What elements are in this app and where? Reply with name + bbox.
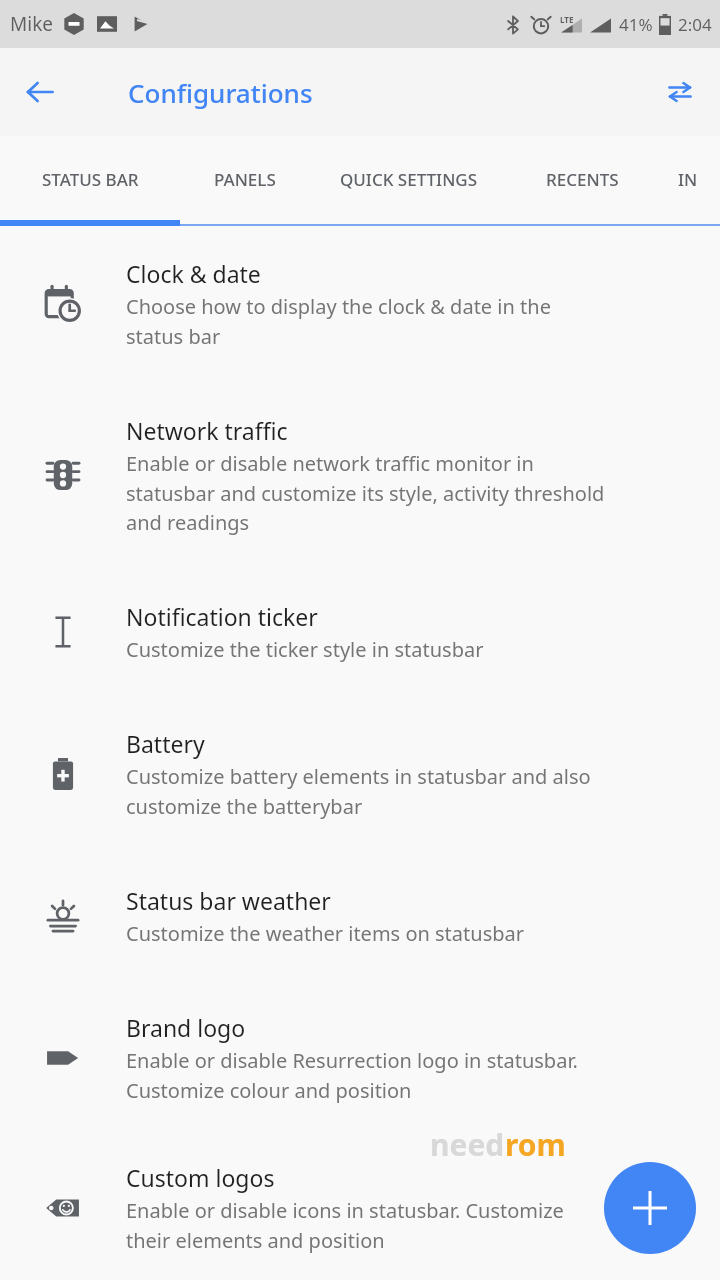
button[interactable]: Notification ticker <box>0 568 720 696</box>
staticText: QUICK SETTINGS <box>340 168 478 191</box>
button[interactable]: Swap <box>652 64 708 120</box>
staticText: Enable or disable network traffic monito… <box>126 450 605 536</box>
button[interactable]: IN <box>656 136 720 222</box>
staticText: Customize battery elements in statusbar … <box>126 763 591 820</box>
staticText: LTE <box>560 14 574 25</box>
button[interactable]: Back <box>12 64 68 120</box>
button[interactable]: Add <box>604 1162 696 1254</box>
staticText: Status bar weather <box>126 885 331 916</box>
staticText: need <box>430 1124 505 1165</box>
staticText: Notification ticker <box>126 601 318 632</box>
staticText: 41% <box>619 13 653 36</box>
staticText: PANELS <box>214 168 276 191</box>
button[interactable]: RECENTS <box>508 136 656 222</box>
button[interactable]: Network traffic <box>0 382 720 568</box>
button[interactable]: Brand logo <box>0 980 720 1136</box>
staticText: Battery <box>126 728 205 759</box>
staticText: Network traffic <box>126 415 288 446</box>
button[interactable]: PANELS <box>180 136 310 222</box>
staticText: IN <box>678 168 698 191</box>
staticText: RECENTS <box>546 168 619 191</box>
staticText: Customize the weather items on statusbar <box>126 920 524 947</box>
button[interactable]: Status bar weather <box>0 852 720 980</box>
button[interactable]: Clock & date <box>0 226 720 382</box>
button[interactable]: Custom logos <box>0 1136 720 1280</box>
staticText: Mike <box>10 11 53 37</box>
staticText: Brand logo <box>126 1012 246 1043</box>
staticText: Configurations <box>128 75 313 110</box>
staticText: Enable or disable Resurrection logo in s… <box>126 1047 578 1104</box>
button[interactable]: Battery <box>0 696 720 852</box>
button[interactable]: QUICK SETTINGS <box>310 136 508 222</box>
staticText: STATUS BAR <box>42 168 139 191</box>
staticText: Enable or disable icons in statusbar. Cu… <box>126 1197 564 1254</box>
staticText: Custom logos <box>126 1162 275 1193</box>
staticText: Customize the ticker style in statusbar <box>126 636 484 663</box>
staticText: Clock & date <box>126 258 261 289</box>
staticText: Choose how to display the clock & date i… <box>126 293 551 350</box>
staticText: 2:04 <box>678 13 712 36</box>
staticText: rom <box>505 1124 566 1165</box>
button[interactable]: STATUS BAR <box>0 136 180 222</box>
